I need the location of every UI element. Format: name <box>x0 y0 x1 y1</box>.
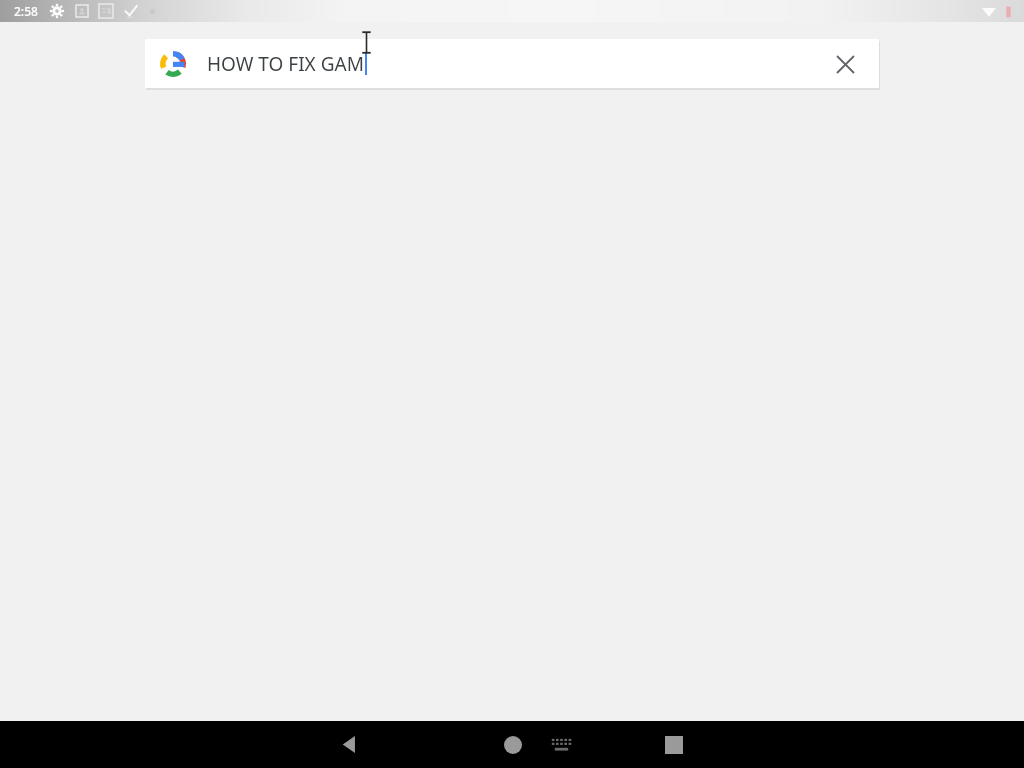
button[interactable]: Keyboard <box>541 725 581 765</box>
button[interactable]: HOW TO FIX GAM <box>145 39 879 88</box>
button[interactable]: Recent apps <box>650 721 697 768</box>
button[interactable]: Clear search <box>821 40 869 88</box>
staticText: 2:58 <box>14 3 38 19</box>
button[interactable]: Back <box>326 721 373 768</box>
button[interactable]: Home <box>489 721 536 768</box>
staticText: HOW TO FIX GAM <box>207 51 364 77</box>
